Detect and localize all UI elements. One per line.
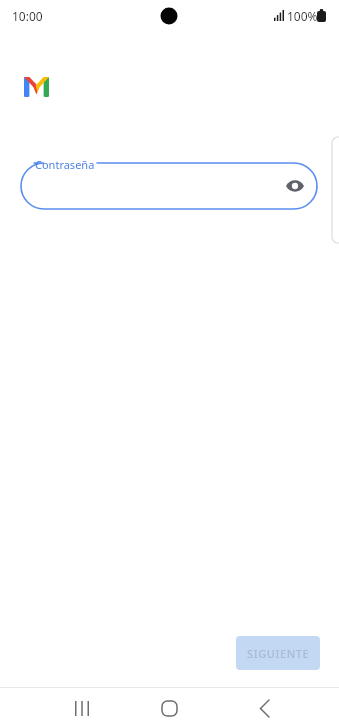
button[interactable]: SIGUIENTE <box>236 636 320 670</box>
button[interactable]: Atrás <box>236 688 292 728</box>
button[interactable]: Contraseña <box>21 157 317 209</box>
staticText: SIGUIENTE <box>247 646 310 661</box>
button[interactable]: Inicio <box>141 688 197 728</box>
button[interactable]: Mostrar contraseña <box>280 171 310 201</box>
staticText: Contraseña <box>35 157 95 172</box>
staticText: 10:00 <box>12 8 43 24</box>
button[interactable]: Recientes <box>54 688 110 728</box>
staticText: 100% <box>287 8 318 24</box>
